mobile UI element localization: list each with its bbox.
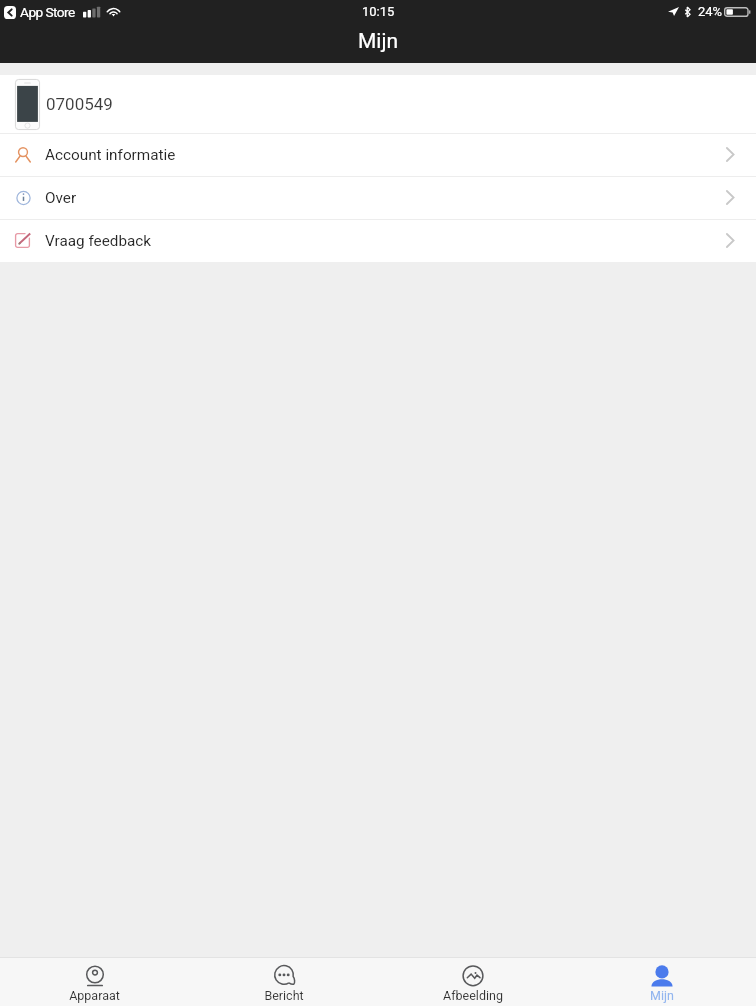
- staticText: Account informatie: [45, 146, 176, 164]
- staticText: Bericht: [264, 988, 304, 1003]
- button[interactable]: Mijn: [567, 958, 756, 1006]
- button[interactable]: Vraag feedback: [0, 220, 756, 262]
- button[interactable]: Over: [0, 177, 756, 219]
- staticText: Apparaat: [69, 988, 120, 1003]
- button[interactable]: Afbeelding: [378, 958, 567, 1006]
- staticText: Over: [45, 189, 77, 207]
- staticText: 0700549: [46, 94, 113, 114]
- staticText: App Store: [20, 4, 75, 20]
- button[interactable]: Account informatie: [0, 134, 756, 176]
- staticText: 10:15: [362, 4, 395, 19]
- button[interactable]: Apparaat: [0, 958, 189, 1006]
- other: Back to App Store: [4, 6, 16, 19]
- staticText: Afbeelding: [443, 988, 503, 1003]
- button[interactable]: 0700549: [0, 75, 756, 133]
- button[interactable]: Bericht: [189, 958, 378, 1006]
- staticText: Vraag feedback: [45, 232, 152, 250]
- staticText: 24%: [698, 4, 723, 19]
- staticText: Mijn: [358, 29, 399, 54]
- button[interactable]: Back to App Store: [0, 4, 121, 20]
- staticText: Mijn: [650, 988, 674, 1003]
